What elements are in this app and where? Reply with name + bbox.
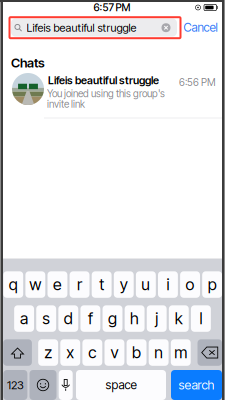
button[interactable]: Emoji (29, 370, 56, 400)
staticText: r (77, 275, 82, 294)
button[interactable]: e (47, 271, 67, 298)
staticText: v (110, 343, 118, 362)
button[interactable]: f (80, 305, 100, 332)
button[interactable]: y (114, 271, 134, 298)
button[interactable]: m (171, 339, 191, 366)
staticText: d (64, 309, 73, 328)
staticText: x (66, 343, 74, 362)
staticText: z (44, 343, 52, 362)
staticText: Chats (11, 55, 45, 71)
button[interactable]: r (70, 271, 89, 298)
staticText: Lifeis beautiful struggle (26, 21, 136, 34)
staticText: i (166, 275, 169, 294)
staticText: a (20, 309, 28, 328)
button[interactable]: space (76, 370, 166, 400)
staticText: w (29, 275, 41, 294)
staticText: q (9, 275, 18, 294)
button[interactable]: g (102, 305, 122, 332)
button[interactable]: w (25, 271, 45, 298)
staticText: m (174, 343, 187, 362)
button[interactable]: n (149, 339, 169, 366)
staticText: j (155, 309, 158, 328)
staticText: 6:57 PM (93, 1, 130, 14)
button[interactable]: Lifeis beautiful struggle (11, 18, 177, 36)
button[interactable]: o (180, 271, 200, 298)
button[interactable]: q (3, 271, 23, 298)
button[interactable]: 123 (3, 370, 27, 400)
staticText: p (208, 275, 217, 294)
staticText: space (105, 378, 136, 392)
staticText: h (130, 309, 139, 328)
staticText: search (178, 377, 214, 393)
button[interactable]: Shift (3, 339, 32, 366)
button[interactable]: u (136, 271, 156, 298)
staticText: 123 (7, 378, 24, 392)
button[interactable]: v (104, 339, 124, 366)
staticText: y (120, 275, 128, 294)
staticText: b (132, 343, 141, 362)
button[interactable]: Delete (197, 339, 222, 366)
staticText: You joined using this group's (47, 87, 165, 100)
button[interactable]: search (171, 370, 222, 400)
button[interactable]: b (127, 339, 146, 366)
button[interactable]: x (60, 339, 80, 366)
staticText: Lifeis beautiful struggle (48, 74, 159, 87)
staticText: u (141, 275, 150, 294)
button[interactable]: h (125, 305, 144, 332)
button[interactable]: Lifeis beautiful struggle (3, 71, 222, 117)
staticText: 6:56 PM (179, 76, 216, 88)
staticText: s (42, 309, 50, 328)
staticText: f (88, 309, 93, 328)
button[interactable]: l (191, 305, 211, 332)
staticText: g (108, 309, 117, 328)
button[interactable]: d (58, 305, 78, 332)
staticText: o (185, 275, 194, 294)
staticText: e (53, 275, 62, 294)
staticText: n (154, 343, 163, 362)
staticText: c (88, 343, 96, 362)
button[interactable]: i (158, 271, 178, 298)
staticText: Cancel (183, 20, 217, 35)
button[interactable]: t (92, 271, 112, 298)
staticText: invite link (47, 98, 85, 110)
button[interactable]: Cancel (181, 18, 219, 36)
button[interactable]: s (36, 305, 56, 332)
button[interactable]: j (147, 305, 167, 332)
button[interactable]: p (202, 271, 222, 298)
button[interactable]: c (82, 339, 102, 366)
button[interactable]: a (14, 305, 34, 332)
staticText: k (175, 309, 183, 328)
button[interactable]: z (38, 339, 58, 366)
button[interactable]: k (169, 305, 189, 332)
staticText: t (99, 275, 104, 294)
button[interactable]: Dictate (59, 370, 73, 400)
staticText: l (199, 309, 202, 328)
